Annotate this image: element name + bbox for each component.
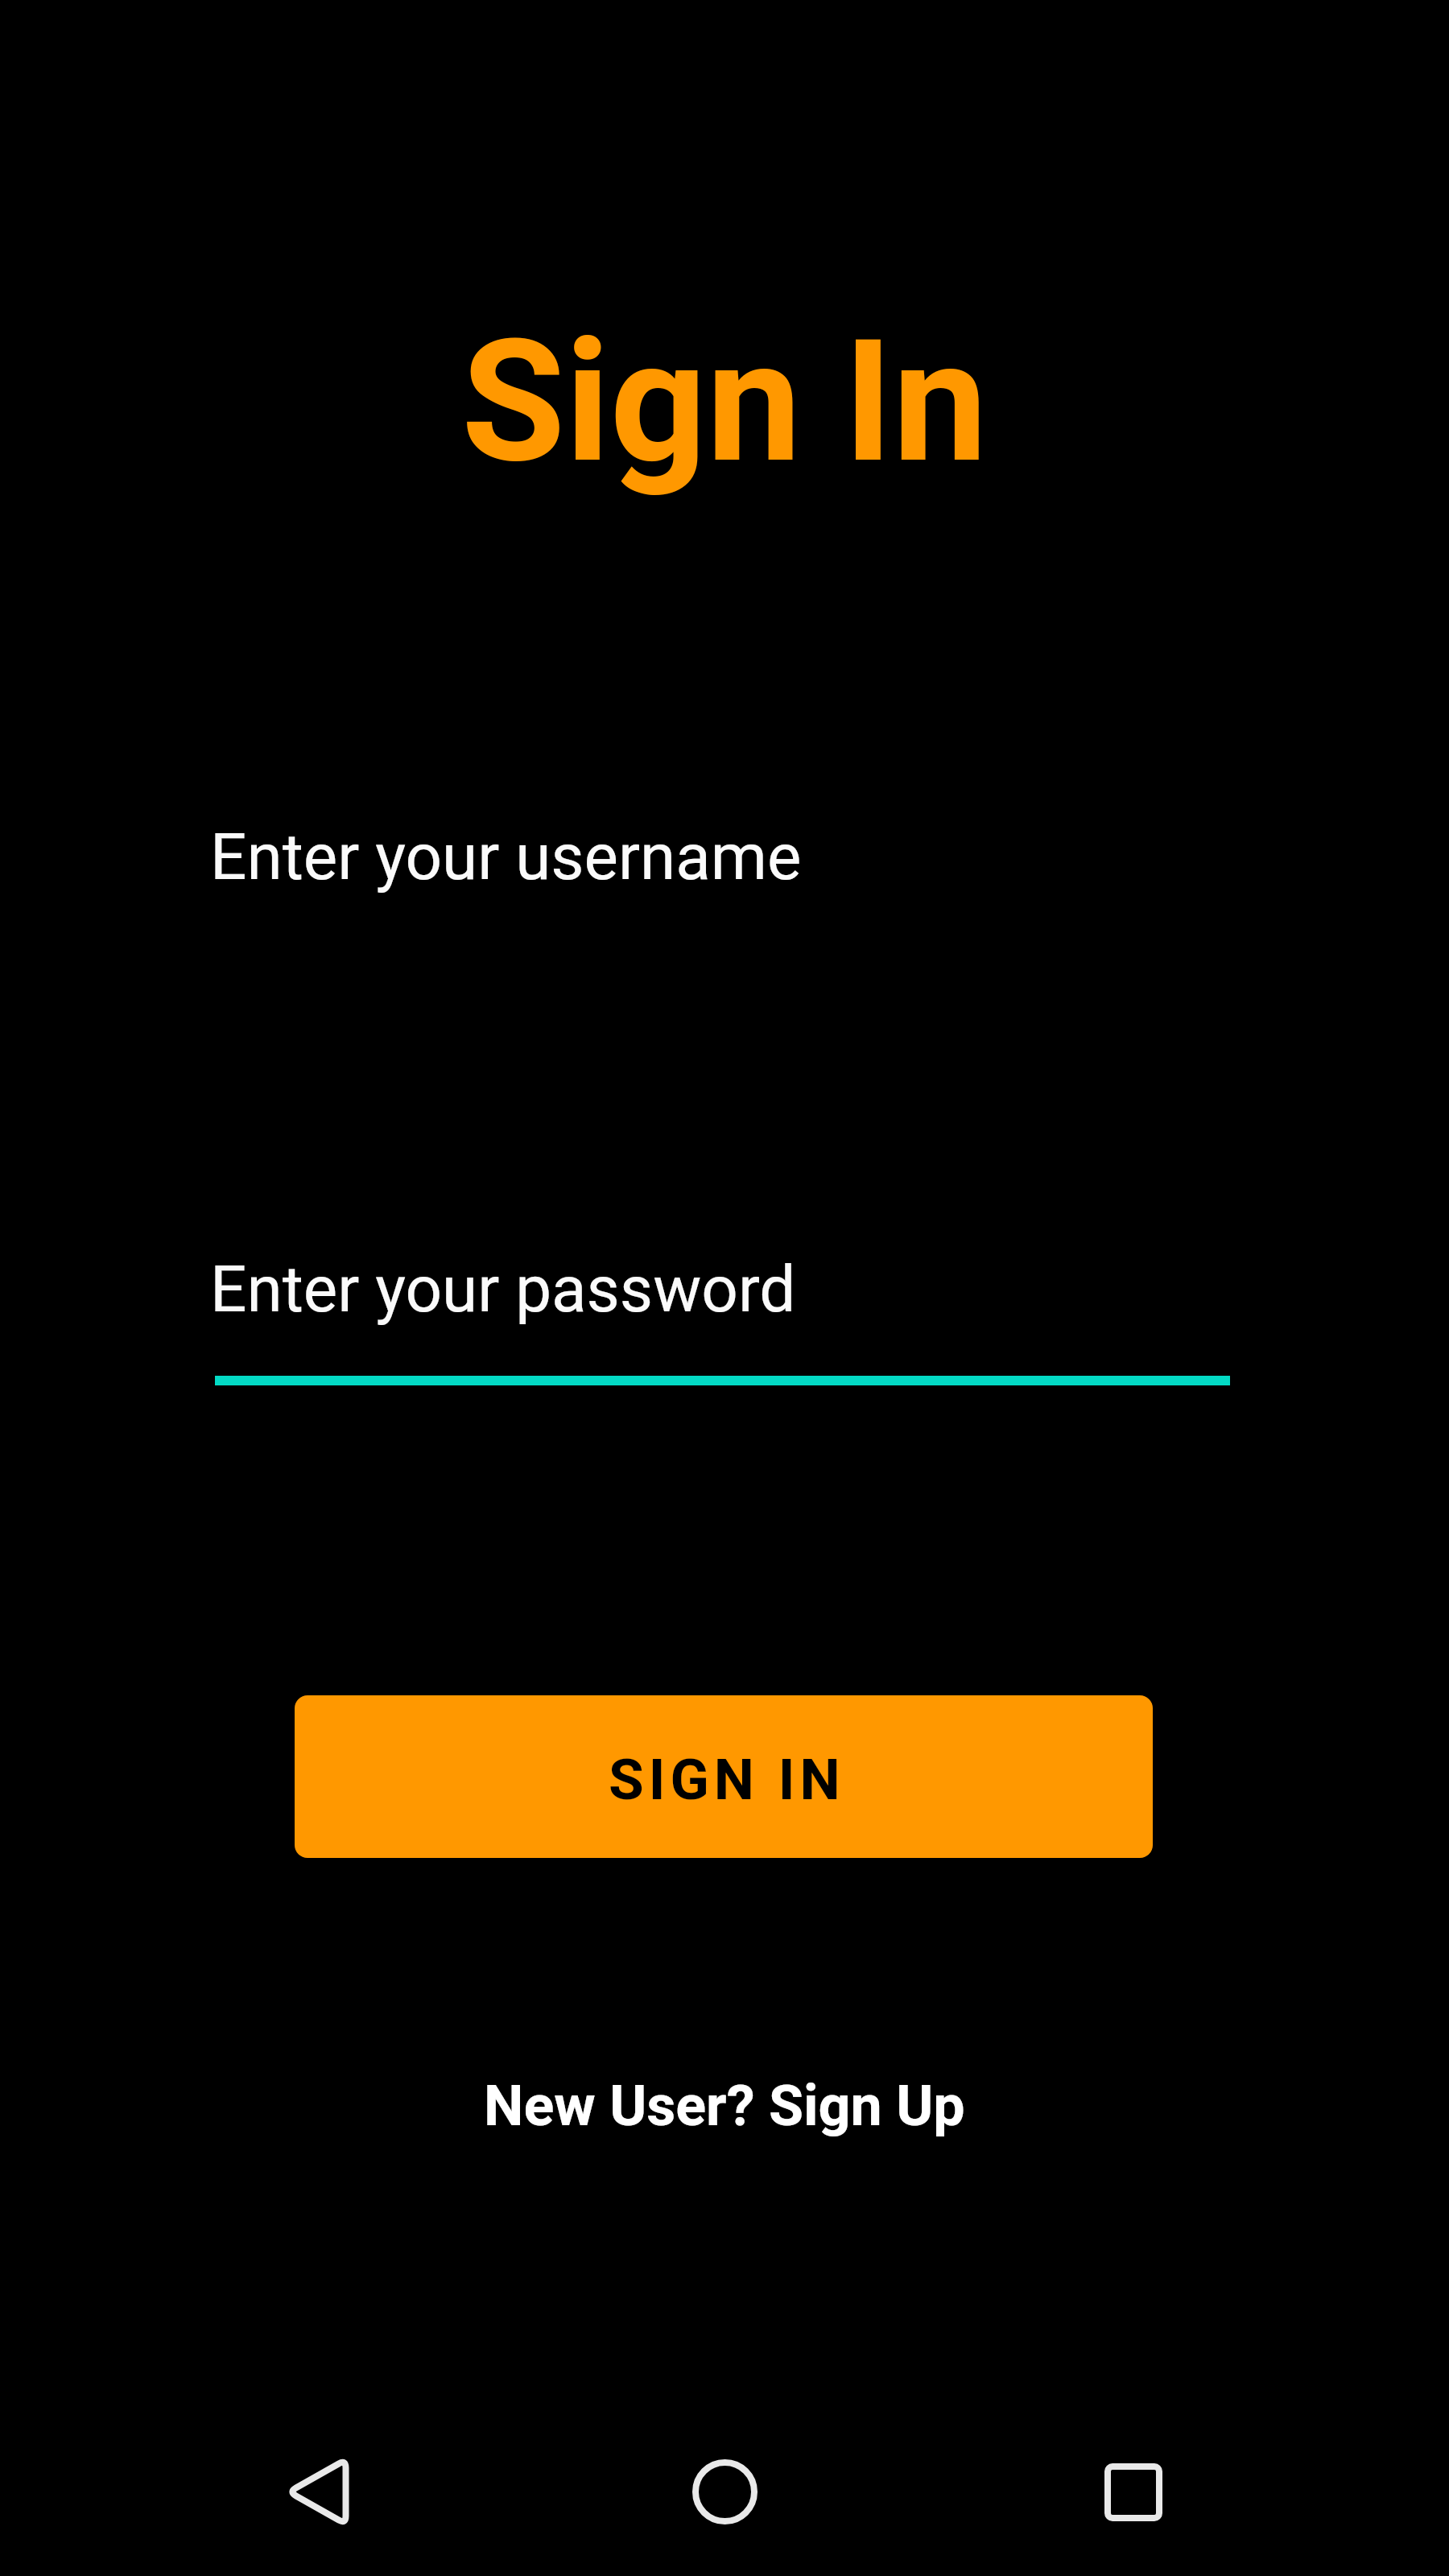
button[interactable] [667, 2434, 782, 2550]
staticText: Enter your password [210, 1252, 796, 1327]
staticText: Sign In [461, 303, 988, 501]
button[interactable]: Enter your username [210, 805, 1225, 956]
button[interactable] [261, 2434, 377, 2550]
button[interactable]: SIGN IN [295, 1695, 1153, 1858]
staticText: Enter your username [210, 819, 802, 895]
staticText: SIGN IN [609, 1746, 845, 1813]
button[interactable] [1075, 2434, 1191, 2550]
button[interactable]: New User? Sign Up [484, 2073, 965, 2139]
button[interactable]: Enter your password [210, 1234, 1225, 1385]
